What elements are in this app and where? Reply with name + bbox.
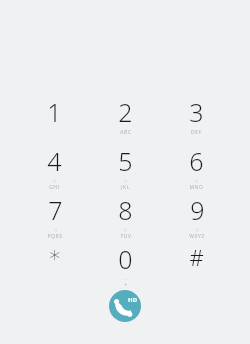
button[interactable]: 6 xyxy=(161,144,232,191)
staticText: HD xyxy=(128,296,138,304)
button[interactable]: 4 xyxy=(19,144,90,191)
button[interactable]: 9 xyxy=(161,193,232,240)
button[interactable]: 2 xyxy=(90,95,161,136)
staticText: + xyxy=(124,282,128,286)
staticText: 0 xyxy=(118,242,133,276)
button[interactable]: ∗ xyxy=(19,242,90,268)
staticText: TUV xyxy=(120,233,132,240)
staticText: ؟؛ xyxy=(195,228,200,233)
staticText: 7 xyxy=(48,193,63,227)
staticText: WXYZ xyxy=(189,233,205,240)
staticText: DEF xyxy=(191,129,202,136)
button[interactable]: 8 xyxy=(90,193,161,240)
staticText: ∗ xyxy=(48,242,62,268)
staticText: ABC xyxy=(120,129,132,136)
staticText: 1 xyxy=(47,95,62,129)
staticText: 3 xyxy=(189,95,204,129)
staticText: JKL xyxy=(121,184,130,191)
staticText: 5 xyxy=(118,144,133,178)
button[interactable]: 1 xyxy=(19,95,90,129)
button[interactable]: # xyxy=(161,242,232,272)
staticText: # xyxy=(189,242,204,272)
staticText: ؟؛ xyxy=(53,228,58,233)
button[interactable]: 7 xyxy=(19,193,90,240)
button[interactable]: Call xyxy=(109,290,141,322)
staticText: 9 xyxy=(190,193,205,227)
staticText: MNO xyxy=(189,184,204,191)
staticText: 8 xyxy=(118,193,133,227)
staticText: ؟؛ xyxy=(194,179,199,184)
staticText: ؟؛ xyxy=(123,179,128,184)
staticText: ؟؛ xyxy=(52,179,57,184)
staticText: 4 xyxy=(47,144,62,178)
staticText: PQRS xyxy=(47,233,63,240)
staticText: 6 xyxy=(189,144,204,178)
staticText: 2 xyxy=(118,95,133,129)
staticText: GHI xyxy=(49,184,60,191)
button[interactable]: 5 xyxy=(90,144,161,191)
button[interactable]: 0 xyxy=(90,242,161,286)
button[interactable]: 3 xyxy=(161,95,232,136)
staticText: ؟؛ xyxy=(123,228,128,233)
